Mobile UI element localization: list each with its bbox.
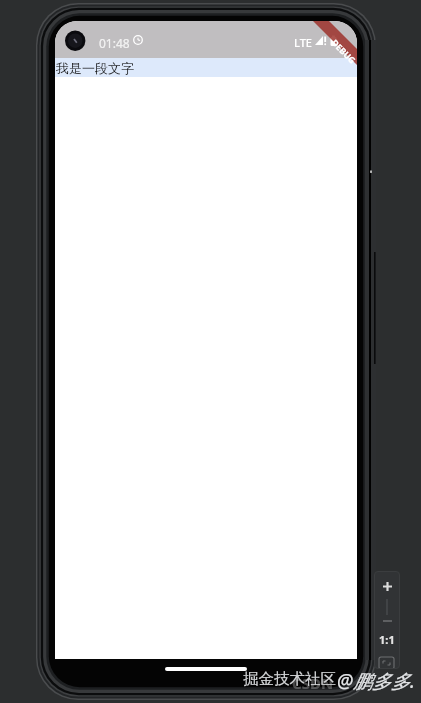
button[interactable]: 我是一段文字 bbox=[55, 58, 357, 77]
staticText: 01:48 bbox=[99, 35, 130, 51]
staticText: 我是一段文字 bbox=[56, 60, 134, 76]
button[interactable]: 1:1 bbox=[374, 626, 400, 652]
staticText: DEBUG bbox=[329, 37, 357, 67]
staticText: LTE bbox=[294, 35, 312, 50]
staticText: CSDN bbox=[292, 673, 334, 693]
button[interactable]: Zoom in bbox=[374, 573, 400, 599]
staticText: 1:1 bbox=[379, 632, 395, 647]
button[interactable]: Zoom out bbox=[374, 616, 400, 626]
button[interactable]: Fit to screen bbox=[379, 657, 394, 669]
staticText: 掘金技术社区 bbox=[243, 669, 336, 689]
staticText: @鹏多多. bbox=[337, 668, 415, 694]
